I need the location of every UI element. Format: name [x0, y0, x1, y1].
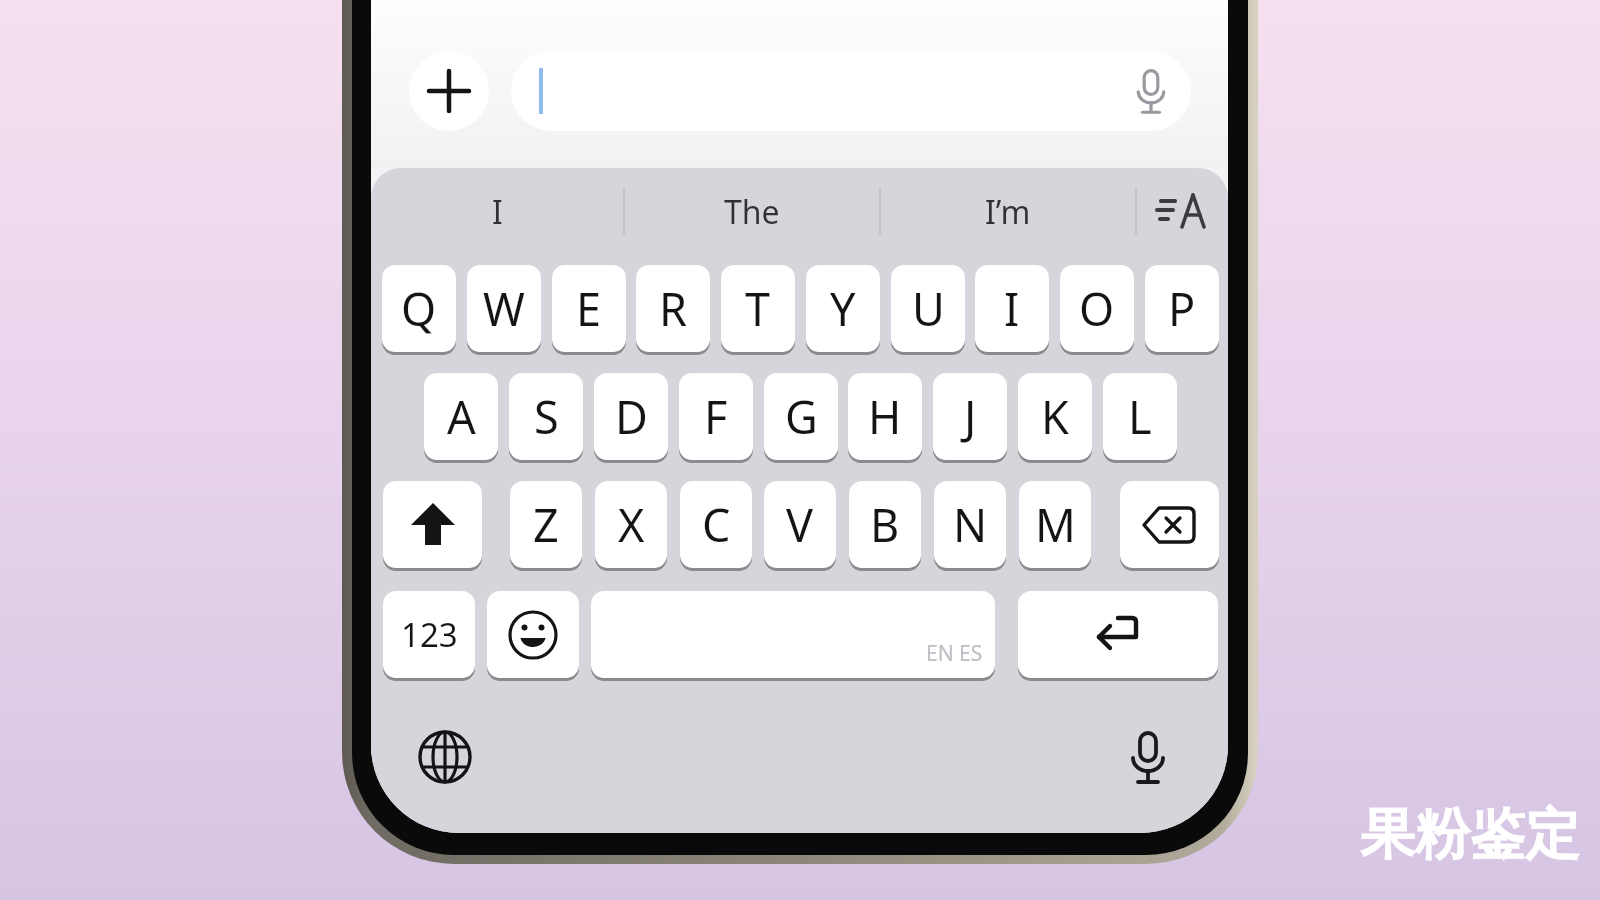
staticText: 123: [401, 612, 458, 657]
button[interactable]: Z: [510, 481, 582, 568]
button[interactable]: A: [424, 373, 498, 460]
button[interactable]: X: [595, 481, 667, 568]
button[interactable]: T: [721, 265, 795, 352]
button[interactable]: I’m: [880, 182, 1136, 242]
button[interactable]: C: [680, 481, 752, 568]
staticText: G: [785, 386, 818, 447]
button[interactable]: O: [1060, 265, 1134, 352]
staticText: A: [447, 386, 476, 447]
button[interactable]: [417, 729, 473, 785]
button[interactable]: Y: [806, 265, 880, 352]
button[interactable]: I: [975, 265, 1049, 352]
button[interactable]: [1018, 591, 1218, 678]
staticText: Z: [533, 494, 559, 555]
staticText: L: [1128, 386, 1152, 447]
button[interactable]: B: [849, 481, 921, 568]
staticText: The: [724, 190, 780, 234]
button[interactable]: [383, 481, 482, 568]
staticText: T: [745, 278, 771, 339]
staticText: S: [534, 386, 559, 447]
button[interactable]: 123: [383, 591, 475, 678]
button[interactable]: [409, 51, 489, 131]
button[interactable]: U: [891, 265, 965, 352]
staticText: E: [576, 278, 602, 339]
button[interactable]: I: [371, 182, 624, 242]
button[interactable]: P: [1145, 265, 1219, 352]
staticText: N: [953, 494, 988, 555]
button[interactable]: M: [1019, 481, 1091, 568]
staticText: R: [659, 278, 687, 339]
button[interactable]: [1149, 185, 1213, 237]
button[interactable]: D: [594, 373, 668, 460]
staticText: Q: [401, 278, 437, 339]
staticText: P: [1168, 278, 1196, 339]
button[interactable]: G: [764, 373, 838, 460]
button[interactable]: S: [509, 373, 583, 460]
staticText: W: [483, 278, 525, 339]
button[interactable]: E: [552, 265, 626, 352]
staticText: Y: [830, 278, 856, 339]
button[interactable]: K: [1018, 373, 1092, 460]
staticText: M: [1035, 494, 1076, 555]
button[interactable]: H: [848, 373, 922, 460]
button[interactable]: J: [933, 373, 1007, 460]
staticText: I’m: [985, 190, 1031, 234]
staticText: I: [492, 190, 503, 234]
button[interactable]: EN ES: [591, 591, 995, 678]
button[interactable]: L: [1103, 373, 1177, 460]
staticText: D: [615, 386, 648, 447]
staticText: C: [702, 494, 731, 555]
button[interactable]: [487, 591, 579, 678]
button[interactable]: [1120, 481, 1219, 568]
staticText: 果粉鉴定: [1360, 800, 1580, 869]
staticText: EN ES: [926, 639, 983, 668]
staticText: U: [912, 278, 945, 339]
staticText: I: [1004, 278, 1020, 339]
button[interactable]: F: [679, 373, 753, 460]
staticText: V: [786, 494, 814, 555]
button[interactable]: Q: [382, 265, 456, 352]
staticText: F: [704, 386, 728, 447]
button[interactable]: W: [467, 265, 541, 352]
button[interactable]: N: [934, 481, 1006, 568]
staticText: H: [868, 386, 902, 447]
button[interactable]: R: [636, 265, 710, 352]
staticText: O: [1079, 278, 1115, 339]
button[interactable]: The: [624, 182, 880, 242]
staticText: J: [964, 386, 977, 447]
staticText: B: [870, 494, 900, 555]
staticText: K: [1041, 386, 1069, 447]
button[interactable]: V: [764, 481, 836, 568]
button[interactable]: [1120, 729, 1176, 785]
staticText: X: [618, 494, 645, 555]
button[interactable]: [511, 51, 1191, 131]
